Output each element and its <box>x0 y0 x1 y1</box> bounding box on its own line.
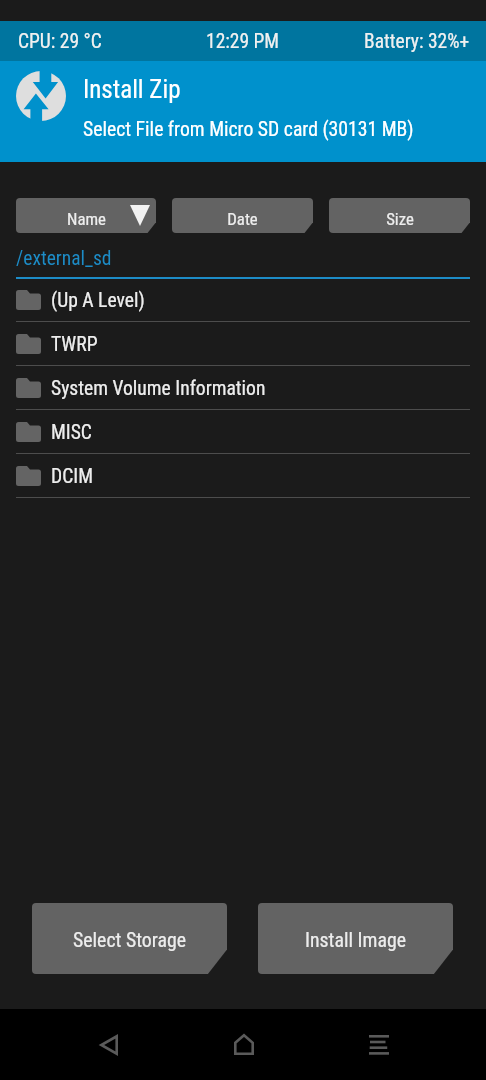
button[interactable]: Select Storage <box>32 903 227 974</box>
staticText: 12:29 PM <box>206 30 280 53</box>
button[interactable]: System Volume Information <box>0 366 486 409</box>
staticText: Install Zip <box>83 75 181 104</box>
staticText: Select Storage <box>73 929 186 952</box>
staticText: System Volume Information <box>51 377 266 400</box>
staticText: (Up A Level) <box>51 289 145 312</box>
staticText: Name <box>67 209 106 229</box>
button[interactable]: MISC <box>0 410 486 453</box>
staticText: TWRP <box>51 333 98 356</box>
staticText: MISC <box>51 421 92 444</box>
button[interactable]: Size <box>329 198 470 233</box>
button[interactable]: DCIM <box>0 454 486 497</box>
button[interactable]: (Up A Level) <box>0 278 486 321</box>
staticText: Select File from Micro SD card (30131 MB… <box>83 118 414 141</box>
staticText: CPU: 29 °C <box>18 30 102 53</box>
button[interactable]: Name <box>16 198 156 233</box>
staticText: Install Image <box>305 929 406 952</box>
button[interactable]: Back <box>64 1009 154 1080</box>
staticText: Date <box>227 209 258 229</box>
button[interactable]: Date <box>172 198 313 233</box>
button[interactable]: Home <box>199 1009 289 1080</box>
staticText: DCIM <box>51 465 93 488</box>
button[interactable]: Install Image <box>258 903 453 974</box>
button[interactable]: TWRP <box>0 322 486 365</box>
button[interactable]: Recent apps <box>334 1009 424 1080</box>
staticText: Battery: 32%+ <box>364 30 470 53</box>
staticText: /external_sd <box>16 247 112 270</box>
staticText: Size <box>386 209 414 229</box>
